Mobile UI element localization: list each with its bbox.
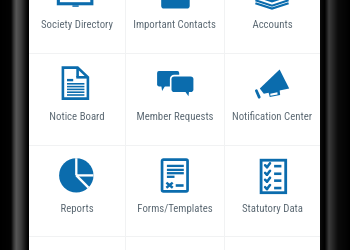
- staticText: Notice Board: [49, 110, 105, 123]
- button[interactable]: Forms/Templates: [125, 145, 224, 237]
- button[interactable]: Notice Board: [29, 53, 125, 145]
- button[interactable]: Help Desk: [29, 236, 125, 250]
- staticText: Notification Center: [232, 110, 312, 123]
- staticText: Statutory Data: [242, 202, 303, 215]
- staticText: Reports: [60, 202, 94, 215]
- staticText: Accounts: [252, 18, 293, 31]
- button[interactable]: Reports: [29, 145, 125, 237]
- staticText: Forms/Templates: [137, 202, 213, 215]
- staticText: Important Contacts: [133, 18, 216, 31]
- button[interactable]: Society Directory: [29, 0, 125, 53]
- button[interactable]: Settings: [224, 236, 320, 250]
- button[interactable]: Accounts: [224, 0, 320, 53]
- staticText: Society Directory: [41, 18, 113, 31]
- button[interactable]: Statutory Data: [224, 145, 320, 237]
- button[interactable]: Important Contacts: [125, 0, 224, 53]
- button[interactable]: Notification Center: [224, 53, 320, 145]
- staticText: Member Requests: [136, 110, 214, 123]
- button[interactable]: Complaints: [125, 236, 224, 250]
- button[interactable]: Member Requests: [125, 53, 224, 145]
